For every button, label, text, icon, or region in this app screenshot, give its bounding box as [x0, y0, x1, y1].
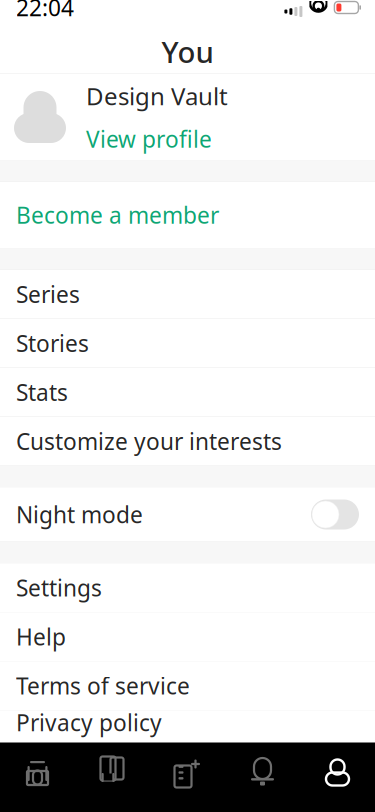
staticText: Settings: [16, 573, 102, 603]
button[interactable]: You: [300, 748, 375, 797]
staticText: Series: [16, 279, 80, 309]
staticText: Help: [16, 622, 66, 652]
button[interactable]: Stories: [0, 319, 375, 368]
staticText: Customize your interests: [16, 426, 282, 456]
button[interactable]: Settings: [0, 563, 375, 612]
staticText: You: [161, 32, 213, 71]
button[interactable]: New story: [150, 748, 225, 797]
staticText: Become a member: [16, 200, 219, 230]
staticText: Privacy policy: [16, 707, 162, 737]
button[interactable]: Home: [0, 748, 75, 797]
staticText: Design Vault: [86, 80, 228, 112]
staticText: Stories: [16, 328, 89, 358]
button[interactable]: Notifications: [225, 748, 300, 797]
button[interactable]: Night mode: [0, 487, 375, 541]
button[interactable]: Bookmarks: [75, 748, 150, 797]
staticText: Night mode: [16, 499, 143, 529]
button[interactable]: Design Vault: [0, 74, 375, 160]
button[interactable]: Series: [0, 270, 375, 319]
staticText: View profile: [86, 124, 212, 154]
button[interactable]: Stats: [0, 368, 375, 417]
button[interactable]: Become a member: [0, 182, 375, 248]
button[interactable]: Help: [0, 612, 375, 661]
button[interactable]: Terms of service: [0, 661, 375, 710]
staticText: Terms of service: [16, 671, 190, 701]
staticText: 22:04: [16, 0, 74, 22]
button[interactable]: Customize your interests: [0, 417, 375, 465]
staticText: Stats: [16, 377, 68, 407]
